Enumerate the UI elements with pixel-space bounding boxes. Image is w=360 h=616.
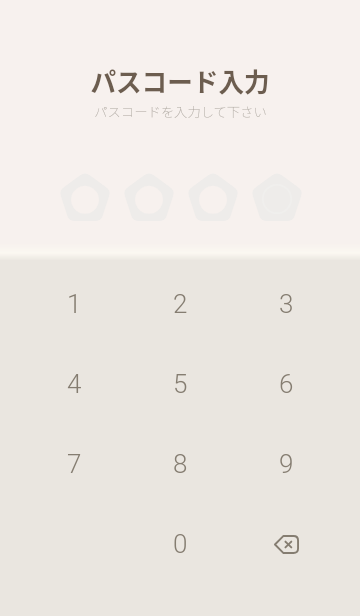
button[interactable]: 9 <box>233 424 339 504</box>
button[interactable]: 2 <box>127 264 233 344</box>
staticText: 6 <box>279 369 294 399</box>
button[interactable]: 6 <box>233 344 339 424</box>
staticText: 4 <box>67 369 82 399</box>
button[interactable]: 5 <box>127 344 233 424</box>
button[interactable]: 3 <box>233 264 339 344</box>
staticText: パスコード入力 <box>90 62 270 99</box>
staticText: 0 <box>173 529 188 559</box>
staticText: 9 <box>279 449 294 479</box>
staticText: 2 <box>173 289 188 319</box>
button[interactable]: 4 <box>21 344 127 424</box>
button[interactable]: 0 <box>127 504 233 584</box>
button[interactable]: 7 <box>21 424 127 504</box>
staticText: 3 <box>279 289 294 319</box>
button[interactable]: Delete <box>233 504 339 584</box>
staticText: 5 <box>173 369 188 399</box>
staticText: パスコードを入力して下さい <box>94 102 267 121</box>
staticText: 7 <box>67 449 82 479</box>
staticText: 1 <box>67 289 82 319</box>
staticText: 8 <box>173 449 188 479</box>
button[interactable]: 8 <box>127 424 233 504</box>
button[interactable]: 1 <box>21 264 127 344</box>
